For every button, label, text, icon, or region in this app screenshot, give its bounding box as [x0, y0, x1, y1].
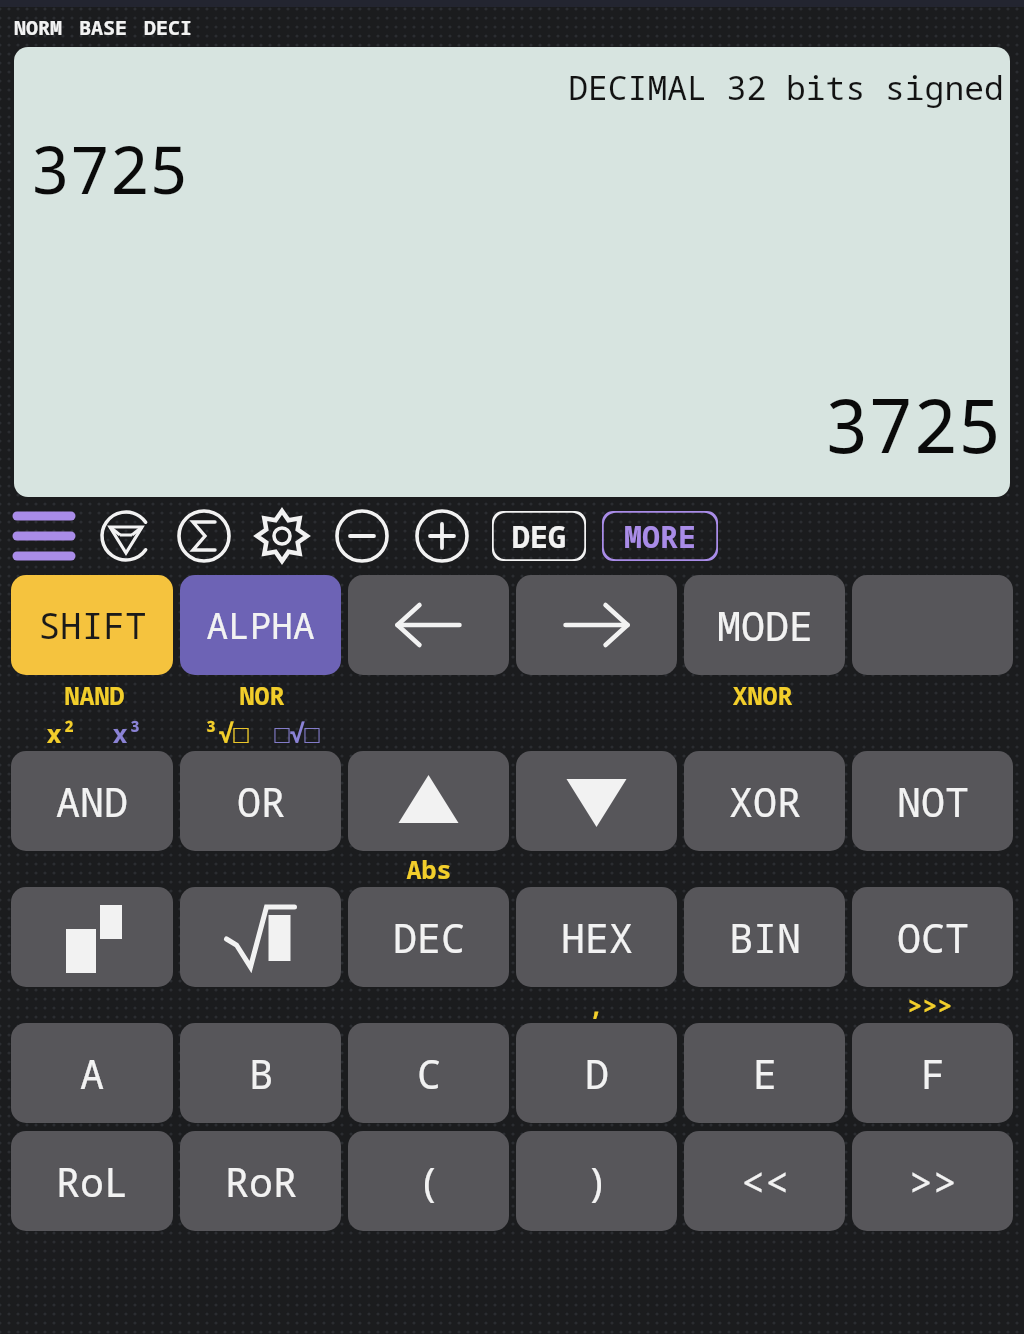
staticText: D — [585, 1046, 609, 1100]
button[interactable]: C — [348, 1023, 509, 1123]
staticText: ) — [585, 1154, 609, 1208]
staticText: BIN — [729, 910, 801, 964]
staticText: DECI — [144, 14, 192, 41]
staticText: SHIFT — [38, 601, 147, 650]
button[interactable]: DEG — [492, 511, 586, 561]
button[interactable]: ALPHA — [180, 575, 341, 675]
staticText: XNOR — [732, 678, 793, 712]
staticText: A — [80, 1046, 104, 1100]
staticText: HEX — [561, 910, 633, 964]
button[interactable]: DEC — [348, 887, 509, 987]
button[interactable]: A — [11, 1023, 173, 1123]
staticText: NORM — [14, 14, 62, 41]
button[interactable]: E — [684, 1023, 845, 1123]
staticText: Abs — [406, 852, 452, 886]
button[interactable]: ArrowRight — [516, 575, 677, 675]
staticText: ALPHA — [206, 601, 315, 650]
button[interactable]: RoR — [180, 1131, 341, 1231]
button[interactable]: >> — [852, 1131, 1013, 1231]
button[interactable] — [852, 575, 1013, 675]
staticText: RoR — [225, 1154, 297, 1208]
staticText: DEC — [393, 910, 465, 964]
button[interactable]: TriUp — [348, 751, 509, 851]
button[interactable]: Sum — [176, 508, 232, 564]
staticText: OCT — [897, 910, 969, 964]
staticText: DEG — [512, 516, 566, 557]
staticText: F — [921, 1046, 945, 1100]
staticText: 3725 — [824, 374, 1002, 475]
button[interactable]: MORE — [602, 511, 718, 561]
button[interactable]: << — [684, 1131, 845, 1231]
button[interactable]: B — [180, 1023, 341, 1123]
staticText: MODE — [717, 598, 813, 652]
staticText: NOT — [897, 774, 969, 828]
button[interactable]: Power — [11, 887, 173, 987]
staticText: E — [753, 1046, 777, 1100]
button[interactable]: HEX — [516, 887, 677, 987]
staticText: BASE — [79, 14, 127, 41]
button[interactable]: BIN — [684, 887, 845, 987]
button[interactable]: Zoom out — [334, 508, 390, 564]
staticText: 3725 — [30, 123, 189, 213]
staticText: x³ — [112, 716, 143, 750]
button[interactable]: RoL — [11, 1131, 173, 1231]
button[interactable]: OR — [180, 751, 341, 851]
staticText: AND — [56, 774, 128, 828]
button[interactable]: ( — [348, 1131, 509, 1231]
staticText: >>> — [907, 988, 953, 1022]
button[interactable]: D — [516, 1023, 677, 1123]
button[interactable]: Menu — [16, 508, 72, 564]
staticText: x² — [46, 716, 77, 750]
button[interactable]: Zoom in — [414, 508, 470, 564]
staticText: □√□ — [274, 716, 320, 750]
button[interactable]: SHIFT — [11, 575, 173, 675]
button[interactable]: AND — [11, 751, 173, 851]
staticText: NAND — [64, 678, 125, 712]
button[interactable]: Settings — [254, 508, 310, 564]
staticText: C — [417, 1046, 441, 1100]
button[interactable]: OCT — [852, 887, 1013, 987]
staticText: RoL — [56, 1154, 128, 1208]
button[interactable]: Sqrt — [180, 887, 341, 987]
staticText: NOR — [239, 678, 285, 712]
staticText: MORE — [624, 516, 696, 557]
button[interactable]: DECIMAL 32 bits signed — [14, 47, 1010, 497]
staticText: >> — [909, 1154, 957, 1208]
staticText: , — [588, 988, 604, 1022]
button[interactable]: ArrowLeft — [348, 575, 509, 675]
staticText: ³√□ — [203, 716, 249, 750]
button[interactable]: F — [852, 1023, 1013, 1123]
button[interactable]: XOR — [684, 751, 845, 851]
staticText: B — [249, 1046, 273, 1100]
button[interactable]: NOT — [852, 751, 1013, 851]
button[interactable]: ) — [516, 1131, 677, 1231]
button[interactable]: MODE — [684, 575, 845, 675]
staticText: DECIMAL 32 bits signed — [568, 65, 1004, 110]
button[interactable]: Constants — [98, 508, 154, 564]
staticText: << — [741, 1154, 789, 1208]
staticText: XOR — [729, 774, 801, 828]
staticText: ( — [417, 1154, 441, 1208]
button[interactable]: TriDown — [516, 751, 677, 851]
staticText: OR — [237, 774, 285, 828]
